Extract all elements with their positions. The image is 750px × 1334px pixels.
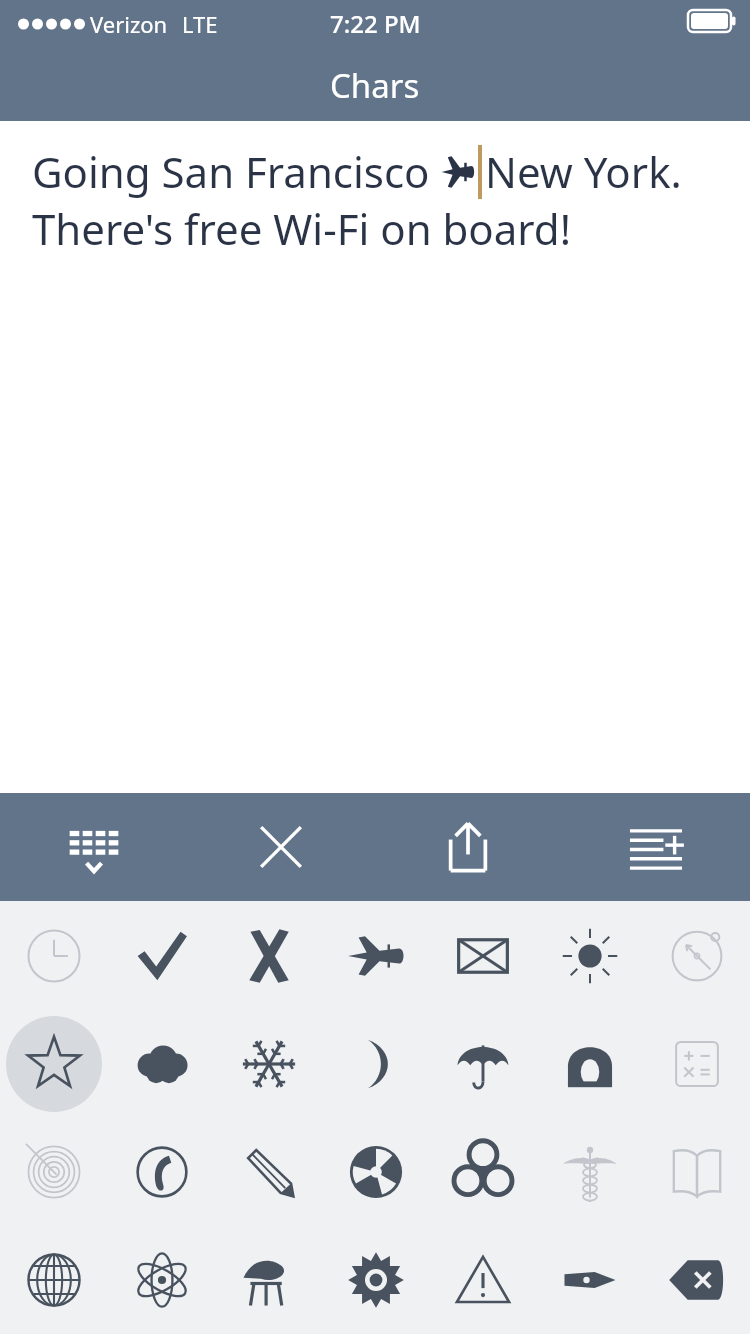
staticText: New York. xyxy=(485,143,682,200)
button[interactable]: Compass xyxy=(643,901,750,1010)
button[interactable]: Umbrella xyxy=(429,1010,536,1118)
button[interactable]: Airplane xyxy=(322,901,429,1010)
button[interactable]: Clock xyxy=(0,901,108,1010)
button[interactable]: Calculator xyxy=(643,1010,750,1118)
button[interactable]: Telephone xyxy=(536,1010,643,1118)
button[interactable]: Globe xyxy=(0,1226,108,1334)
button[interactable]: Radiation xyxy=(322,1118,429,1226)
button[interactable]: Envelope xyxy=(429,901,536,1010)
button[interactable]: Cloud xyxy=(108,1010,215,1118)
button[interactable]: Handset xyxy=(108,1118,215,1226)
staticText: Verizon xyxy=(90,9,168,39)
button[interactable]: Pen xyxy=(536,1226,643,1334)
button[interactable]: Insert xyxy=(562,793,750,901)
button[interactable]: Sun xyxy=(536,901,643,1010)
button[interactable]: Pencil xyxy=(215,1118,322,1226)
button[interactable]: Biohazard xyxy=(429,1118,536,1226)
staticText: Chars xyxy=(330,63,420,108)
button[interactable]: Delete xyxy=(643,1226,750,1334)
button[interactable]: Cross xyxy=(215,901,322,1010)
button[interactable]: Book xyxy=(643,1118,750,1226)
button[interactable]: Target xyxy=(0,1118,108,1226)
button[interactable]: Atom xyxy=(108,1226,215,1334)
button[interactable]: Warning xyxy=(429,1226,536,1334)
button[interactable]: Moon xyxy=(322,1010,429,1118)
button[interactable]: Star xyxy=(0,1010,108,1118)
staticText: Going San Francisco xyxy=(32,143,441,200)
button[interactable]: Check xyxy=(108,901,215,1010)
staticText: LTE xyxy=(182,9,218,39)
staticText: There's free Wi-Fi on board! xyxy=(32,200,571,257)
button[interactable]: Caduceus xyxy=(536,1118,643,1226)
button[interactable]: Telescope xyxy=(215,1226,322,1334)
button[interactable]: Share xyxy=(374,793,562,901)
button[interactable]: Gear xyxy=(322,1226,429,1334)
button[interactable]: Keyboard xyxy=(0,793,187,901)
button[interactable]: Snowflake xyxy=(215,1010,322,1118)
staticText: 7:22 PM xyxy=(330,7,421,40)
button[interactable]: Close xyxy=(187,793,374,901)
